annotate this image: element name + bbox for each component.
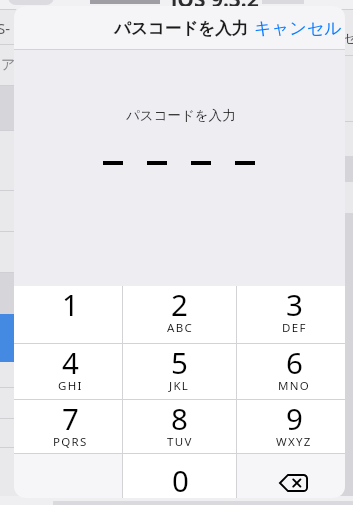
staticText: 2 [171,284,188,324]
button[interactable]: 5 [123,344,236,399]
staticText: 9 [286,398,303,438]
button[interactable]: Delete [237,454,345,498]
staticText: 0 [172,460,189,498]
staticText: パスコードを入力 [114,18,248,39]
staticText: 6 [286,342,303,382]
staticText: WXYZ [276,434,312,450]
staticText: 4 [62,342,79,382]
staticText: PQRS [53,434,88,450]
button[interactable]: 4 [14,344,122,399]
staticText: 5 [171,342,188,382]
button[interactable]: 8 [123,400,236,453]
staticText: セ [343,30,353,46]
staticText: TUV [167,434,193,450]
staticText: iOS 9.3.2 [171,0,259,14]
staticText: MNO [278,378,311,394]
staticText: 3 [286,284,303,324]
button[interactable]: 6 [237,344,345,399]
staticText: ア [1,56,16,74]
staticText: 7 [62,398,79,438]
staticText: パスコードを入力 [126,107,236,124]
staticText: S- [0,18,11,38]
button[interactable]: 7 [14,400,122,453]
button[interactable]: キャンセル [248,11,345,45]
button[interactable]: 1 [14,286,122,343]
button[interactable]: 3 [237,286,345,343]
button[interactable]: 2 [123,286,236,343]
button[interactable]: 9 [237,400,345,453]
staticText: DEF [282,320,307,336]
staticText: キャンセル [254,17,342,39]
staticText: 1 [62,284,79,324]
staticText: ABC [167,320,193,336]
staticText: GHI [58,378,83,394]
staticText: JKL [169,378,190,394]
button[interactable]: 0 [123,454,236,498]
staticText: 8 [171,398,188,438]
